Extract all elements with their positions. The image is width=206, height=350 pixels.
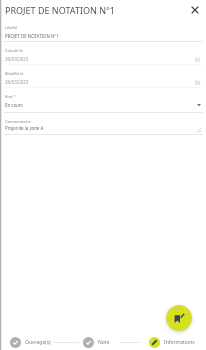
staticText: Note: [98, 339, 110, 346]
staticText: 26/03/2023: [5, 56, 29, 62]
button[interactable]: Commentaire: [0, 112, 206, 134]
button[interactable]: Etat *: [0, 87, 206, 112]
staticText: PROJET DE NOTATION N°1: [5, 4, 115, 16]
button[interactable]: Informations: [149, 334, 195, 350]
staticText: Projet de la zone A: [5, 125, 44, 131]
staticText: En cours: [5, 102, 23, 108]
staticText: PROJET DE NOTATION N°1: [5, 33, 59, 39]
button[interactable]: Modifié le: [0, 64, 206, 87]
staticText: Modifié le: [5, 71, 24, 76]
button[interactable]: Modifier: [166, 305, 192, 331]
button[interactable]: Libellé: [0, 20, 206, 41]
button[interactable]: Fermer: [188, 3, 202, 17]
button[interactable]: Calculé le: [0, 41, 206, 64]
staticText: Calculé le: [5, 48, 23, 53]
staticText: Libellé: [5, 25, 18, 30]
button[interactable]: Ouvrage(s): [10, 334, 51, 350]
button[interactable]: Note: [83, 334, 110, 350]
staticText: Commentaire: [5, 119, 31, 124]
staticText: Etat *: [5, 94, 16, 99]
staticText: Informations: [164, 339, 195, 346]
staticText: 26/03/2023: [5, 79, 29, 85]
staticText: Ouvrage(s): [25, 339, 51, 346]
